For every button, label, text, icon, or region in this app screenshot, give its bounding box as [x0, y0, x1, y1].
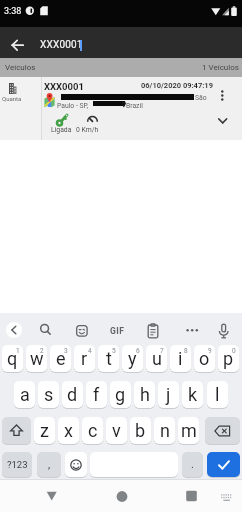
button[interactable] [217, 323, 230, 340]
staticText: c [88, 420, 98, 441]
button[interactable]: v [106, 417, 127, 444]
staticText: . [191, 458, 194, 471]
button[interactable] [6, 34, 30, 56]
button[interactable] [215, 114, 231, 128]
button[interactable]: g [110, 381, 131, 408]
staticText: g [115, 384, 126, 405]
button[interactable] [147, 323, 159, 339]
button[interactable]: ?123 [2, 452, 32, 477]
button[interactable]: d [62, 381, 83, 408]
button[interactable]: XXX0001 [40, 38, 160, 51]
staticText: ?123 [7, 459, 28, 470]
button[interactable] [6, 322, 22, 338]
staticText: Paulo - SP, [57, 102, 89, 110]
button[interactable] [181, 486, 201, 506]
staticText: 1 Veículos [202, 63, 239, 72]
button[interactable]: GIF [105, 324, 129, 338]
button[interactable]: s [38, 381, 59, 408]
staticText: Ligada [51, 126, 72, 134]
button[interactable]: a [14, 381, 35, 408]
button[interactable]: b [130, 417, 151, 444]
staticText: y [128, 348, 137, 369]
button[interactable]: j [158, 381, 179, 408]
staticText: Quanta [2, 95, 22, 102]
staticText: 4 [88, 347, 92, 355]
staticText: w [30, 348, 44, 369]
button[interactable]: e [50, 345, 71, 372]
button[interactable]: z [34, 417, 55, 444]
button[interactable] [65, 452, 87, 477]
staticText: XXX0001 [44, 81, 84, 92]
button[interactable]: k [182, 381, 203, 408]
staticText: , [48, 458, 51, 471]
staticText: XXX0001 [40, 39, 83, 51]
button[interactable]: i [170, 345, 191, 372]
staticText: h [140, 384, 150, 405]
staticText: s [44, 384, 54, 405]
button[interactable]: m [178, 417, 199, 444]
staticText: q [7, 348, 18, 369]
button[interactable]: w [26, 345, 47, 372]
button[interactable]: h [134, 381, 155, 408]
button[interactable]: . [182, 452, 203, 477]
staticText: i [178, 348, 183, 369]
staticText: v [112, 420, 121, 441]
staticText: n [160, 420, 170, 441]
button[interactable] [42, 486, 62, 506]
staticText: z [40, 420, 49, 441]
staticText: 3:38 [4, 6, 22, 17]
button[interactable] [112, 486, 132, 506]
button[interactable]: r [74, 345, 95, 372]
staticText: 0 [232, 347, 236, 355]
button[interactable]: , [37, 452, 61, 477]
button[interactable] [0, 77, 242, 140]
staticText: f [93, 384, 100, 405]
staticText: 1 [16, 347, 20, 355]
staticText: 06/10/2020 09:47:19 [141, 81, 213, 90]
staticText: 7 [160, 347, 164, 355]
staticText: 6 [136, 347, 140, 355]
button[interactable]: u [146, 345, 167, 372]
staticText: o [199, 348, 210, 369]
button[interactable]: y [122, 345, 143, 372]
staticText: x [64, 420, 73, 441]
staticText: d [67, 384, 78, 405]
staticText: Brazil [126, 102, 143, 110]
button[interactable]: l [207, 381, 228, 408]
staticText: Veículos [5, 63, 36, 72]
staticText: l [215, 384, 220, 405]
button[interactable]: q [2, 345, 23, 372]
staticText: t [106, 348, 112, 369]
staticText: 0 Km/h [76, 126, 99, 134]
button[interactable]: c [82, 417, 103, 444]
button[interactable] [2, 417, 31, 444]
staticText: k [188, 384, 198, 405]
button[interactable] [184, 324, 201, 337]
staticText: r [81, 348, 88, 369]
staticText: 9 [208, 347, 212, 355]
staticText: 5 [112, 347, 116, 355]
staticText: 8 [184, 347, 188, 355]
staticText: j [166, 384, 171, 405]
button[interactable]: o [194, 345, 215, 372]
staticText: São [195, 94, 207, 102]
button[interactable]: n [154, 417, 175, 444]
button[interactable] [38, 322, 54, 339]
button[interactable] [205, 417, 240, 444]
staticText: GIF [110, 326, 125, 336]
button[interactable] [216, 87, 229, 104]
button[interactable] [207, 452, 240, 477]
button[interactable]: p [218, 345, 239, 372]
button[interactable]: t [98, 345, 119, 372]
button[interactable]: x [58, 417, 79, 444]
staticText: b [135, 420, 146, 441]
staticText: e [56, 348, 66, 369]
staticText: 3 [64, 347, 68, 355]
button[interactable] [76, 325, 88, 338]
button[interactable]: f [86, 381, 107, 408]
button[interactable] [220, 492, 234, 504]
staticText: p [223, 348, 234, 369]
staticText: u [152, 348, 162, 369]
staticText: m [181, 420, 197, 441]
